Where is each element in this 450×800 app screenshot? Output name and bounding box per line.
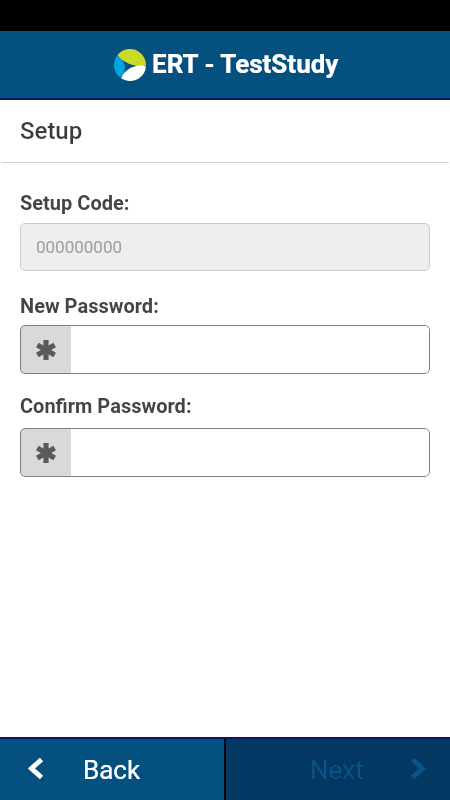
staticText: Next — [310, 755, 364, 785]
staticText: Setup Code: — [20, 191, 130, 214]
button[interactable]: Password entry field — [71, 325, 430, 374]
button[interactable]: Next — [226, 739, 450, 800]
staticText: 000000000 — [36, 237, 122, 257]
staticText: Back — [83, 755, 141, 785]
staticText: Confirm Password: — [20, 394, 192, 417]
button[interactable]: Show password — [20, 325, 71, 374]
button[interactable]: Back — [0, 739, 224, 800]
button[interactable]: Password entry field — [71, 428, 430, 477]
staticText: ERT - TestStudy — [152, 49, 339, 79]
staticText: New Password: — [20, 294, 159, 317]
button[interactable]: Show password — [20, 428, 71, 477]
staticText: Setup — [20, 117, 83, 145]
button[interactable]: 000000000 — [20, 223, 430, 271]
